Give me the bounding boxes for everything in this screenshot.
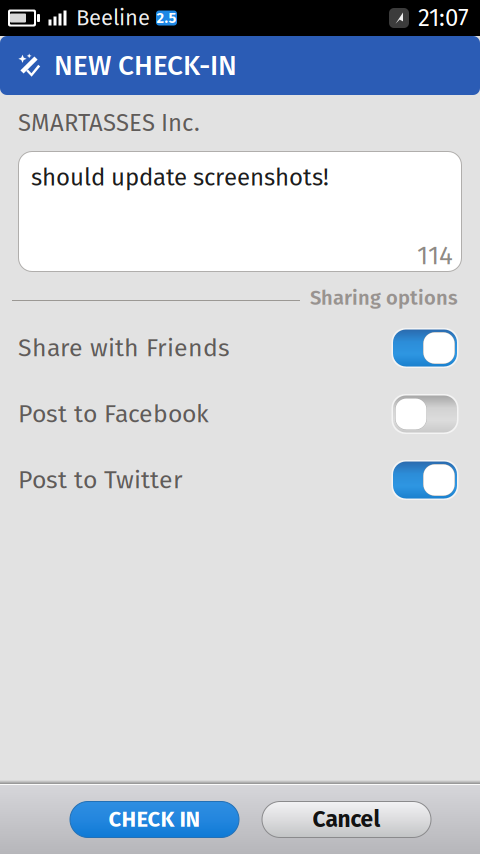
staticText: Post to Twitter [18, 465, 183, 495]
staticText: 21:07 [418, 4, 469, 32]
button[interactable]: Post to Facebook [0, 381, 480, 447]
button[interactable]: Cancel [262, 801, 431, 837]
staticText: SMARTASSES Inc. [18, 109, 200, 137]
staticText: Beeline [76, 5, 150, 31]
staticText: Cancel [312, 806, 380, 833]
button[interactable]: Post to Twitter [0, 447, 480, 513]
staticText: CHECK IN [108, 806, 200, 833]
button[interactable]: should update screenshots! [0, 151, 480, 272]
button[interactable]: CHECK IN [70, 801, 239, 837]
button[interactable]: Share with Friends [0, 315, 480, 381]
staticText: NEW CHECK-IN [54, 49, 237, 82]
staticText: Share with Friends [18, 333, 230, 363]
staticText: should update screenshots! [31, 163, 329, 192]
staticText: 2.5 [156, 9, 176, 27]
staticText: Post to Facebook [18, 399, 209, 429]
staticText: 114 [417, 240, 453, 271]
staticText: Sharing options [310, 286, 458, 310]
